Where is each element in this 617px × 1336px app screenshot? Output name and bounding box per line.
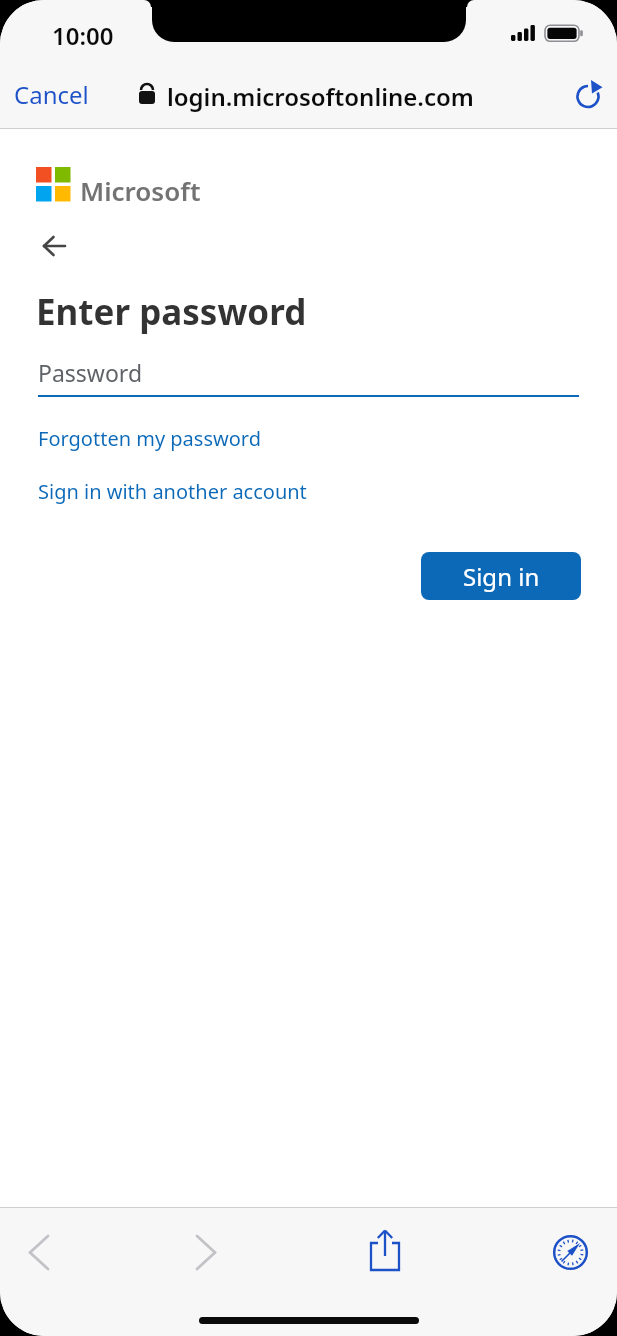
staticText: Forgotten my password [38,425,261,452]
button[interactable] [550,1232,592,1274]
button[interactable] [570,78,608,116]
button[interactable]: Password [38,350,579,398]
staticText: Sign in with another account [38,478,307,505]
button[interactable]: Forgotten my password [38,425,261,452]
button[interactable]: Sign in with another account [38,478,307,505]
staticText: login.microsoftonline.com [167,80,474,113]
staticText: Enter password [36,288,307,336]
staticText: 10:00 [52,19,114,52]
staticText: Sign in [463,560,540,593]
staticText: Cancel [14,78,89,111]
button[interactable] [34,228,74,264]
button[interactable] [185,1232,227,1274]
button[interactable] [363,1224,407,1276]
button[interactable] [18,1232,60,1274]
staticText: Microsoft [80,173,201,208]
staticText: Password [38,357,143,388]
button[interactable]: Sign in [421,552,581,600]
button[interactable]: Cancel [8,74,104,114]
